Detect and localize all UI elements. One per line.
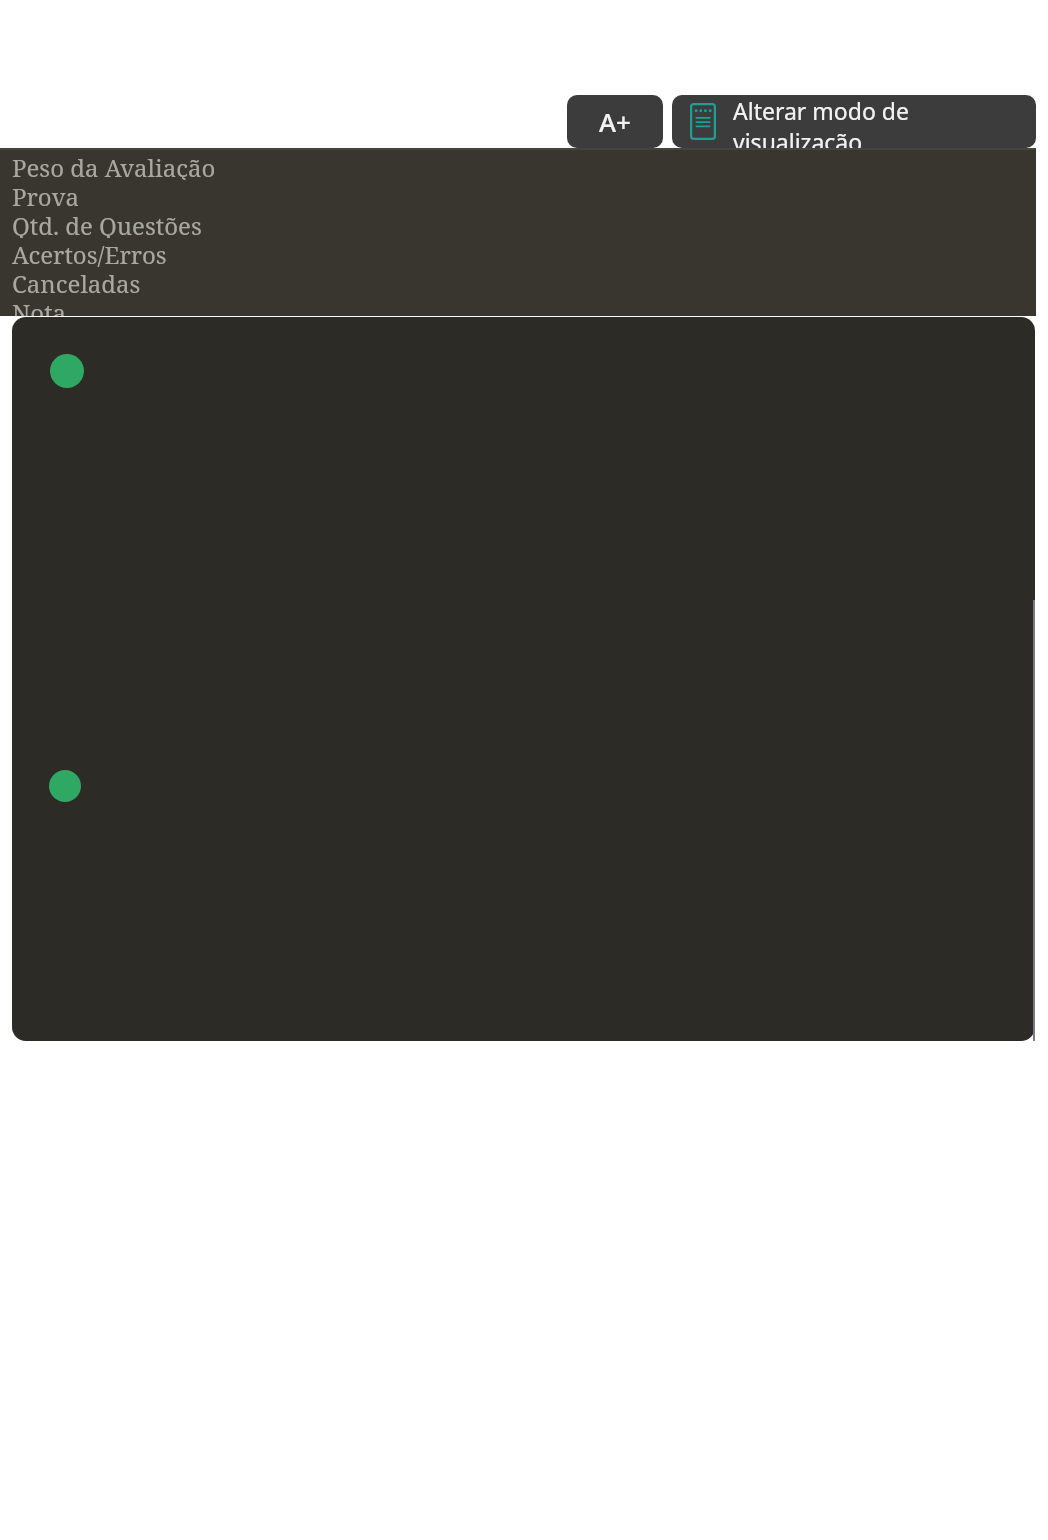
staticText: Alterar modo de visualização bbox=[733, 95, 1018, 148]
staticText: Peso da Avaliação bbox=[12, 151, 216, 180]
staticText: Canceladas bbox=[12, 267, 141, 296]
button[interactable]: Acertos/Erros bbox=[12, 238, 167, 267]
button[interactable]: Item bbox=[49, 770, 81, 802]
staticText: A+ bbox=[599, 104, 631, 139]
button[interactable]: Canceladas bbox=[12, 267, 141, 296]
button[interactable]: Item bbox=[50, 354, 84, 388]
staticText: Qtd. de Questões bbox=[12, 209, 202, 238]
staticText: Acertos/Erros bbox=[12, 238, 167, 267]
staticText: Prova bbox=[12, 180, 80, 209]
staticText: Nota bbox=[12, 296, 67, 316]
button[interactable]: Peso da Avaliação bbox=[12, 151, 216, 180]
button[interactable]: Nota bbox=[12, 296, 67, 316]
button[interactable]: Alterar modo de visualização bbox=[672, 95, 1036, 148]
button[interactable]: Prova bbox=[12, 180, 80, 209]
button[interactable]: A+ bbox=[567, 95, 663, 148]
button[interactable]: Qtd. de Questões bbox=[12, 209, 202, 238]
other: Alterar modo de visualização bbox=[690, 103, 716, 140]
